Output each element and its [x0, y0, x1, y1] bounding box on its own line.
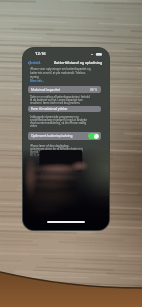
- staticText: Dette er en måling af batterikapaciteten…: [30, 95, 90, 104]
- button[interactable]: Optimeret batteriopladning: [88, 133, 99, 139]
- staticText: Maksimal kapacitet: [31, 88, 60, 92]
- staticText: Optimeret batteriopladning: [31, 134, 73, 138]
- staticText: Evne til maksimal ydelse: [31, 107, 68, 111]
- staticText: iPhone viser oplysninger om batterikapac…: [30, 67, 91, 79]
- staticText: Mere info...: [30, 79, 45, 83]
- button[interactable]: Indstil.: [28, 60, 43, 65]
- staticText: 88 %: [90, 88, 98, 92]
- staticText: iPhone lærer af dine dagligdags opladnin…: [30, 144, 84, 156]
- staticText: Indstil.: [30, 60, 42, 65]
- staticText: 12:16: [35, 51, 46, 57]
- button[interactable]: Optimeret batteriopladning: [28, 132, 101, 140]
- button[interactable]: Evne til maksimal ydelse: [28, 106, 101, 112]
- button[interactable]: Maksimal kapacitet: [28, 86, 101, 93]
- staticText: Indbyggede dynamiske programmer og syste…: [30, 115, 88, 127]
- staticText: Batteritilstand og opladning: [54, 60, 103, 65]
